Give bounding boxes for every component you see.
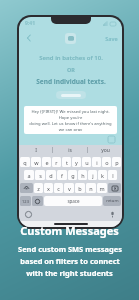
- staticText: g: [71, 172, 75, 179]
- button[interactable]: [56, 91, 86, 99]
- button[interactable]: x: [44, 183, 53, 193]
- staticText: y: [75, 159, 78, 166]
- staticText: e: [45, 159, 49, 166]
- staticText: x: [47, 185, 50, 192]
- staticText: a: [27, 172, 31, 179]
- staticText: return: [106, 198, 119, 204]
- staticText: c: [57, 185, 60, 192]
- staticText: h: [81, 172, 85, 179]
- staticText: j: [92, 172, 94, 179]
- button[interactable]: v: [64, 183, 74, 193]
- button[interactable]: Emoji keyboard: [25, 211, 32, 218]
- staticText: k: [101, 172, 104, 179]
- button[interactable]: o: [102, 157, 111, 167]
- button[interactable]: Hey {{FIRST}}! We missed you last night.…: [24, 106, 117, 134]
- staticText: m: [99, 185, 105, 192]
- button[interactable]: I: [19, 145, 52, 155]
- button[interactable]: r: [52, 157, 61, 167]
- button[interactable]: d: [46, 170, 56, 180]
- staticText: w: [34, 159, 39, 166]
- staticText: 123: [22, 199, 29, 204]
- staticText: n: [89, 185, 93, 192]
- staticText: 9:41: [25, 20, 35, 27]
- staticText: l: [112, 172, 114, 179]
- staticText: Send in batches of 10.: [39, 54, 103, 62]
- button[interactable]: e: [42, 157, 51, 167]
- staticText: Custom Messages: [20, 223, 119, 238]
- button[interactable]: i: [92, 157, 101, 167]
- button[interactable]: k: [98, 170, 107, 180]
- button[interactable]: z: [34, 183, 43, 193]
- staticText: v: [68, 185, 71, 192]
- button[interactable]: App icon: [65, 33, 76, 44]
- button[interactable]: Back: [23, 32, 35, 44]
- staticText: b: [78, 185, 82, 192]
- staticText: z: [37, 185, 40, 192]
- button[interactable]: j: [88, 170, 97, 180]
- staticText: f: [61, 172, 63, 179]
- staticText: with the right students: [26, 268, 113, 278]
- staticText: i: [96, 159, 98, 166]
- staticText: o: [105, 159, 109, 166]
- staticText: is: [68, 147, 72, 154]
- button[interactable]: f: [57, 170, 67, 180]
- button[interactable]: u: [82, 157, 91, 167]
- button[interactable]: Emoji: [32, 196, 43, 206]
- button[interactable]: h: [78, 170, 87, 180]
- button[interactable]: is: [53, 145, 87, 155]
- staticText: p: [115, 159, 119, 166]
- button[interactable]: y: [72, 157, 81, 167]
- button[interactable]: n: [86, 183, 96, 193]
- staticText: q: [23, 159, 27, 166]
- button[interactable]: Send: [108, 136, 115, 143]
- staticText: Send custom SMS messages: [18, 244, 122, 254]
- button[interactable]: c: [54, 183, 63, 193]
- staticText: doing well. Let us know if there's anyth…: [27, 121, 114, 131]
- button[interactable]: l: [108, 170, 117, 180]
- button[interactable]: you: [88, 145, 122, 155]
- button[interactable]: a: [24, 170, 34, 180]
- staticText: space: [67, 198, 80, 204]
- button[interactable]: p: [112, 157, 121, 167]
- button[interactable]: s: [35, 170, 45, 180]
- staticText: you: [101, 147, 110, 154]
- staticText: Hey {{FIRST}}! We missed you last night.…: [27, 109, 114, 121]
- staticText: OR: [67, 66, 75, 73]
- staticText: Save: [105, 35, 118, 42]
- staticText: I: [35, 147, 37, 154]
- staticText: Send individual texts.: [36, 77, 106, 86]
- staticText: based on filters to connect: [20, 256, 120, 266]
- staticText: s: [39, 172, 42, 179]
- button[interactable]: return: [103, 196, 121, 206]
- button[interactable]: Shift: [20, 183, 33, 193]
- staticText: r: [55, 159, 58, 166]
- button[interactable]: Save: [101, 33, 122, 44]
- button[interactable]: Delete: [108, 183, 121, 193]
- button[interactable]: m: [97, 183, 107, 193]
- staticText: d: [49, 172, 53, 179]
- staticText: u: [85, 159, 89, 166]
- button[interactable]: Dictation: [109, 211, 116, 218]
- staticText: t: [66, 159, 68, 166]
- button[interactable]: b: [75, 183, 85, 193]
- button[interactable]: g: [68, 170, 77, 180]
- button[interactable]: space: [44, 196, 102, 206]
- button[interactable]: q: [20, 157, 30, 167]
- button[interactable]: w: [31, 157, 41, 167]
- button[interactable]: Numbers: [20, 196, 31, 206]
- button[interactable]: t: [62, 157, 71, 167]
